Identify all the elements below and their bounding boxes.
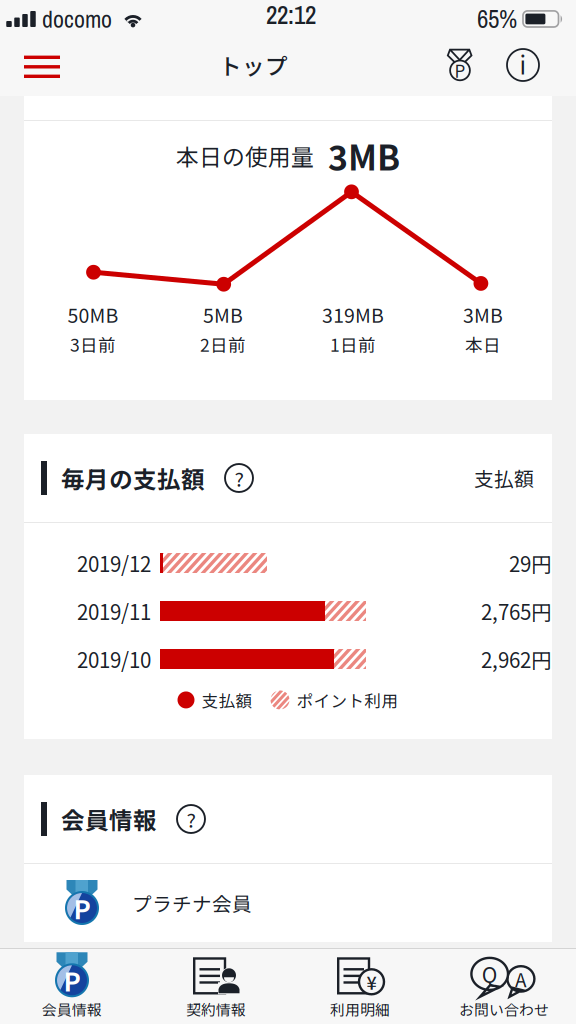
button[interactable]: P (0, 949, 144, 1024)
staticText: P (63, 961, 80, 999)
staticText: 65% (477, 2, 517, 36)
staticText: 本日の使用量 (176, 139, 314, 172)
staticText: 5MB (203, 300, 243, 328)
staticText: お問い合わせ (459, 998, 549, 1020)
staticText: 会員情報 (42, 998, 102, 1020)
staticText: ? (234, 463, 243, 492)
staticText: 2019/11 (77, 596, 151, 626)
staticText: 2,962円 (481, 644, 552, 674)
staticText: 2日前 (200, 331, 246, 357)
staticText: 29円 (509, 548, 552, 578)
staticText: P (454, 58, 465, 83)
staticText: 2,765円 (481, 596, 552, 626)
staticText: トップ (219, 49, 288, 81)
staticText: 利用明細 (330, 998, 390, 1020)
staticText: プラチナ会員 (132, 889, 252, 917)
button[interactable]: 契約情報 (144, 949, 288, 1024)
staticText: P (73, 889, 90, 927)
staticText: 2019/10 (77, 644, 151, 674)
staticText: 3MB (328, 131, 400, 180)
staticText: 319MB (322, 300, 384, 328)
staticText: 3MB (463, 300, 503, 328)
button[interactable]: ¥ (288, 949, 432, 1024)
staticText: i (519, 47, 526, 81)
staticText: ポイント利用 (296, 688, 398, 712)
button[interactable]: メニュー (12, 40, 72, 93)
staticText: 3日前 (70, 331, 116, 357)
staticText: 契約情報 (186, 998, 246, 1020)
staticText: ? (186, 804, 195, 833)
staticText: 支払額 (474, 464, 534, 492)
staticText: 50MB (67, 300, 118, 328)
staticText: A (515, 965, 527, 993)
button[interactable]: ポイント (435, 38, 490, 96)
staticText: 2019/12 (77, 548, 151, 578)
staticText: 会員情報 (61, 802, 157, 836)
staticText: 毎月の支払額 (61, 461, 205, 495)
staticText: 1日前 (330, 331, 376, 357)
button[interactable]: インフォメーション (490, 38, 557, 96)
staticText: docomo (42, 3, 112, 35)
staticText: Q (482, 959, 498, 989)
staticText: 22:12 (266, 0, 316, 32)
staticText: 支払額 (201, 688, 252, 712)
staticText: ¥ (366, 969, 376, 995)
staticText: 本日 (465, 331, 501, 357)
button[interactable]: A (432, 949, 576, 1024)
button[interactable]: ヘルプ (157, 800, 210, 838)
button[interactable]: ヘルプ (205, 459, 258, 497)
